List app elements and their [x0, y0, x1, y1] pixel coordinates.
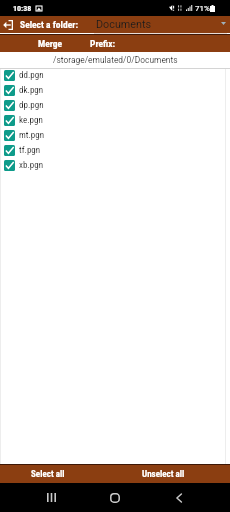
- staticText: ke.pgn: [19, 115, 43, 126]
- staticText: Prefix:: [90, 38, 116, 49]
- button[interactable]: Merge: [0, 35, 101, 52]
- button[interactable]: ke.pgn: [0, 113, 230, 128]
- button[interactable]: Unselect all: [115, 465, 211, 483]
- staticText: /storage/emulated/0/Documents: [53, 55, 178, 65]
- button[interactable]: Back: [0, 16, 15, 33]
- staticText: Unselect all: [142, 469, 185, 480]
- button[interactable]: tf.pgn: [0, 143, 230, 158]
- staticText: dp.pgn: [19, 100, 44, 111]
- staticText: xb.pgn: [19, 160, 43, 171]
- button[interactable]: Home: [100, 483, 130, 512]
- button[interactable]: Back: [164, 483, 194, 512]
- button[interactable]: dd.pgn: [0, 68, 230, 83]
- staticText: tf.pgn: [19, 145, 41, 156]
- button[interactable]: Recent apps: [36, 483, 66, 512]
- button[interactable]: mt.pgn: [0, 128, 230, 143]
- button[interactable]: Documents: [94, 16, 228, 33]
- staticText: Merge: [38, 38, 63, 49]
- button[interactable]: dk.pgn: [0, 83, 230, 98]
- staticText: mt.pgn: [19, 130, 45, 141]
- staticText: Documents: [96, 18, 152, 31]
- staticText: Select a folder:: [20, 19, 78, 30]
- staticText: 10:38: [13, 4, 32, 13]
- staticText: dk.pgn: [19, 85, 44, 96]
- staticText: Select all: [31, 469, 65, 480]
- button[interactable]: dp.pgn: [0, 98, 230, 113]
- staticText: dd.pgn: [19, 70, 44, 81]
- button[interactable]: xb.pgn: [0, 158, 230, 173]
- staticText: 71%: [195, 4, 210, 13]
- button[interactable]: Select all: [0, 465, 96, 483]
